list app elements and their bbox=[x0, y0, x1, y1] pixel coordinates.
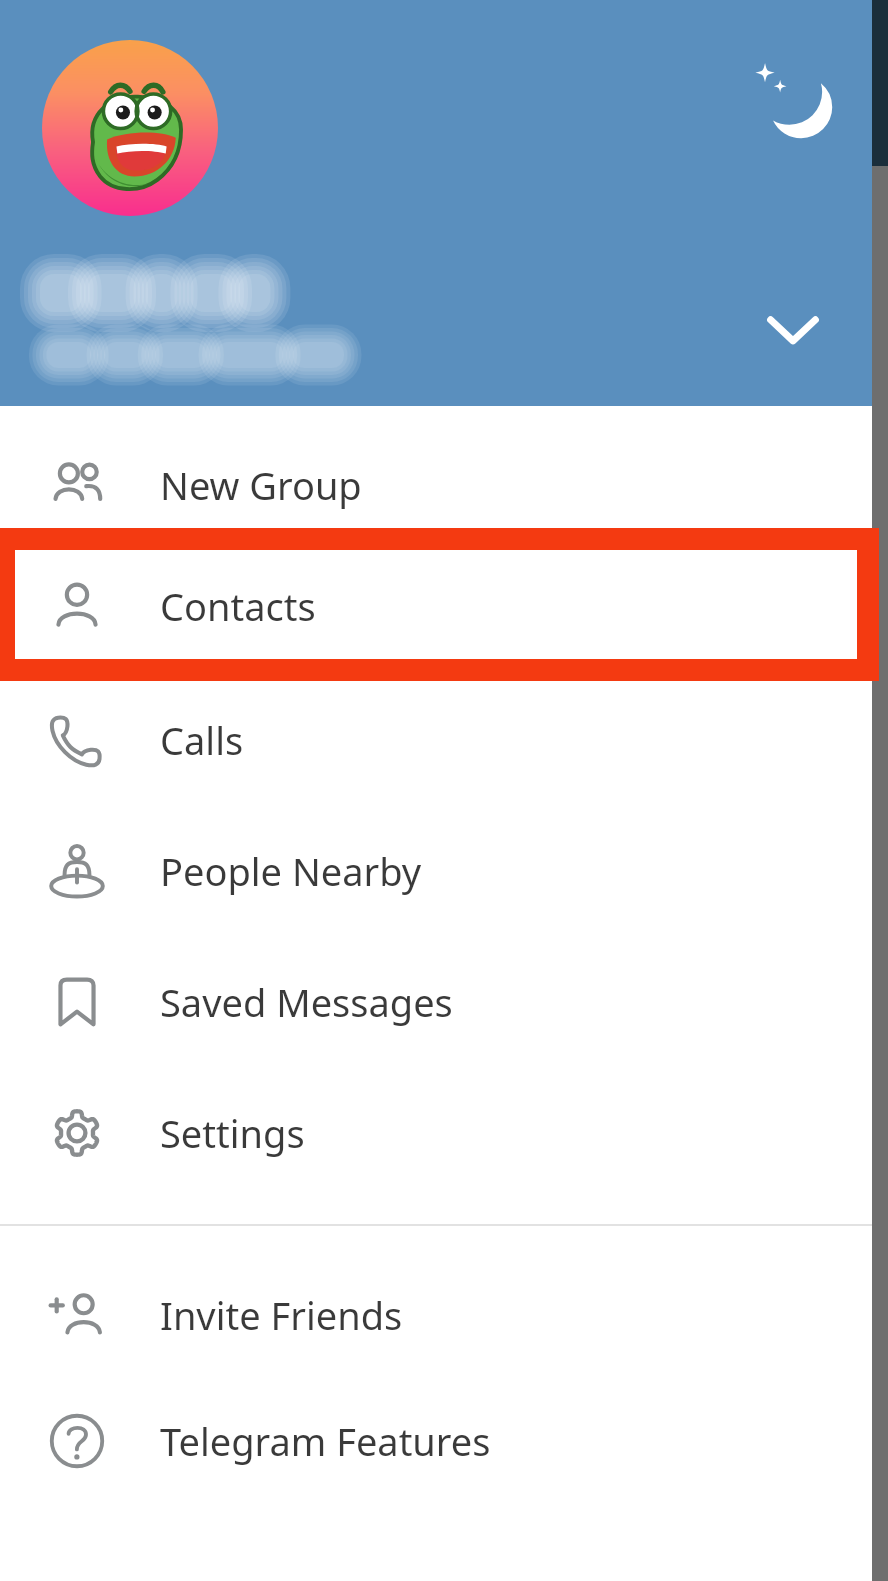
staticText: Contacts bbox=[160, 580, 316, 632]
button[interactable]: Settings bbox=[0, 1067, 872, 1198]
button[interactable]: Telegram Features bbox=[0, 1378, 872, 1504]
button[interactable]: Invite Friends bbox=[0, 1252, 872, 1378]
staticText: New Group bbox=[160, 459, 362, 511]
button[interactable]: Saved Messages bbox=[0, 936, 872, 1067]
staticText: Saved Messages bbox=[160, 976, 453, 1028]
button[interactable]: People Nearby bbox=[0, 805, 872, 936]
staticText: Invite Friends bbox=[160, 1289, 403, 1341]
button[interactable]: Expand accounts bbox=[760, 296, 826, 362]
button[interactable]: Profile photo bbox=[42, 40, 218, 216]
button[interactable]: Toggle night mode bbox=[752, 58, 836, 142]
staticText: Calls bbox=[160, 714, 244, 766]
button[interactable]: Calls bbox=[0, 674, 872, 805]
staticText: Settings bbox=[160, 1107, 305, 1159]
staticText: People Nearby bbox=[160, 845, 422, 897]
staticText: Telegram Features bbox=[160, 1415, 491, 1467]
button[interactable]: Contacts bbox=[0, 537, 872, 674]
button[interactable]: New Group bbox=[0, 432, 872, 537]
